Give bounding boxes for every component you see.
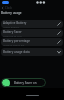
staticText: Battery Saver on [14, 81, 37, 85]
button[interactable]: Battery percentage [1, 38, 63, 46]
other: Edit [56, 39, 62, 45]
button[interactable]: Battery Saver [1, 29, 63, 37]
button[interactable]: Adaptive Battery [1, 20, 63, 28]
staticText: Battery usage [1, 11, 22, 15]
staticText: Turns on at 15% [3, 34, 22, 37]
other: Edit [56, 30, 62, 36]
staticText: Adaptive Battery [3, 21, 27, 25]
staticText: Clock [5, 6, 13, 10]
button[interactable]: Battery usage data [1, 48, 63, 56]
staticText: Battery Saver [3, 30, 22, 34]
button[interactable]: Back [0, 5, 13, 10]
other: Edit [56, 21, 62, 27]
staticText: Battery percentage [3, 39, 31, 43]
other: Expand [56, 49, 62, 55]
other: Back [1, 6, 5, 10]
staticText: Battery usage data [3, 50, 30, 54]
button[interactable]: Battery Saver on [1, 78, 46, 87]
staticText: Limits battery [3, 25, 20, 28]
staticText: Show in status bar [3, 43, 25, 46]
